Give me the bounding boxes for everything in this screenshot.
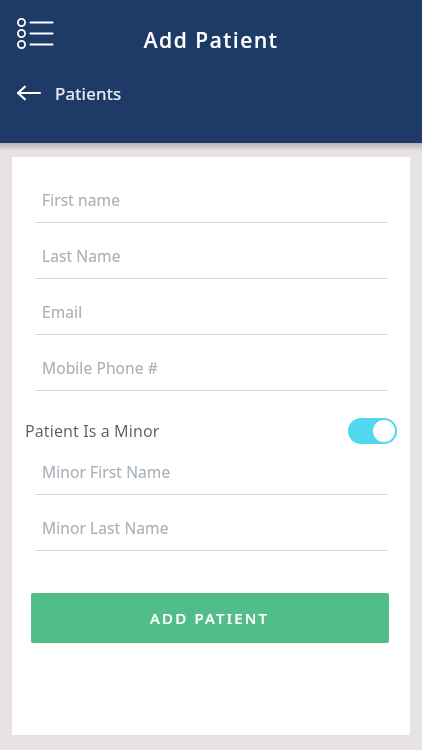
staticText: Mobile Phone # [42, 357, 158, 378]
button[interactable]: Mobile Phone # [35, 352, 388, 391]
other: Patient Is a Minor toggle [348, 418, 397, 444]
button[interactable]: Email [35, 296, 388, 335]
button[interactable]: First name [35, 184, 388, 223]
button[interactable]: Menu [12, 16, 60, 64]
staticText: Patient Is a Minor [25, 420, 160, 442]
staticText: Minor First Name [42, 461, 171, 482]
staticText: ADD PATIENT [150, 608, 270, 628]
staticText: First name [42, 189, 121, 210]
button[interactable]: Minor First Name [35, 456, 388, 495]
button[interactable]: Last Name [35, 240, 388, 279]
other: Back [16, 80, 42, 106]
staticText: Patients [55, 82, 122, 105]
staticText: Email [42, 301, 83, 322]
staticText: Minor Last Name [42, 517, 169, 538]
button[interactable]: Back [0, 76, 122, 110]
button[interactable]: Minor Last Name [35, 512, 388, 551]
staticText: Last Name [42, 245, 121, 266]
button[interactable]: ADD PATIENT [31, 593, 389, 643]
staticText: Add Patient [0, 26, 422, 55]
button[interactable]: Patient Is a Minor [25, 411, 397, 451]
